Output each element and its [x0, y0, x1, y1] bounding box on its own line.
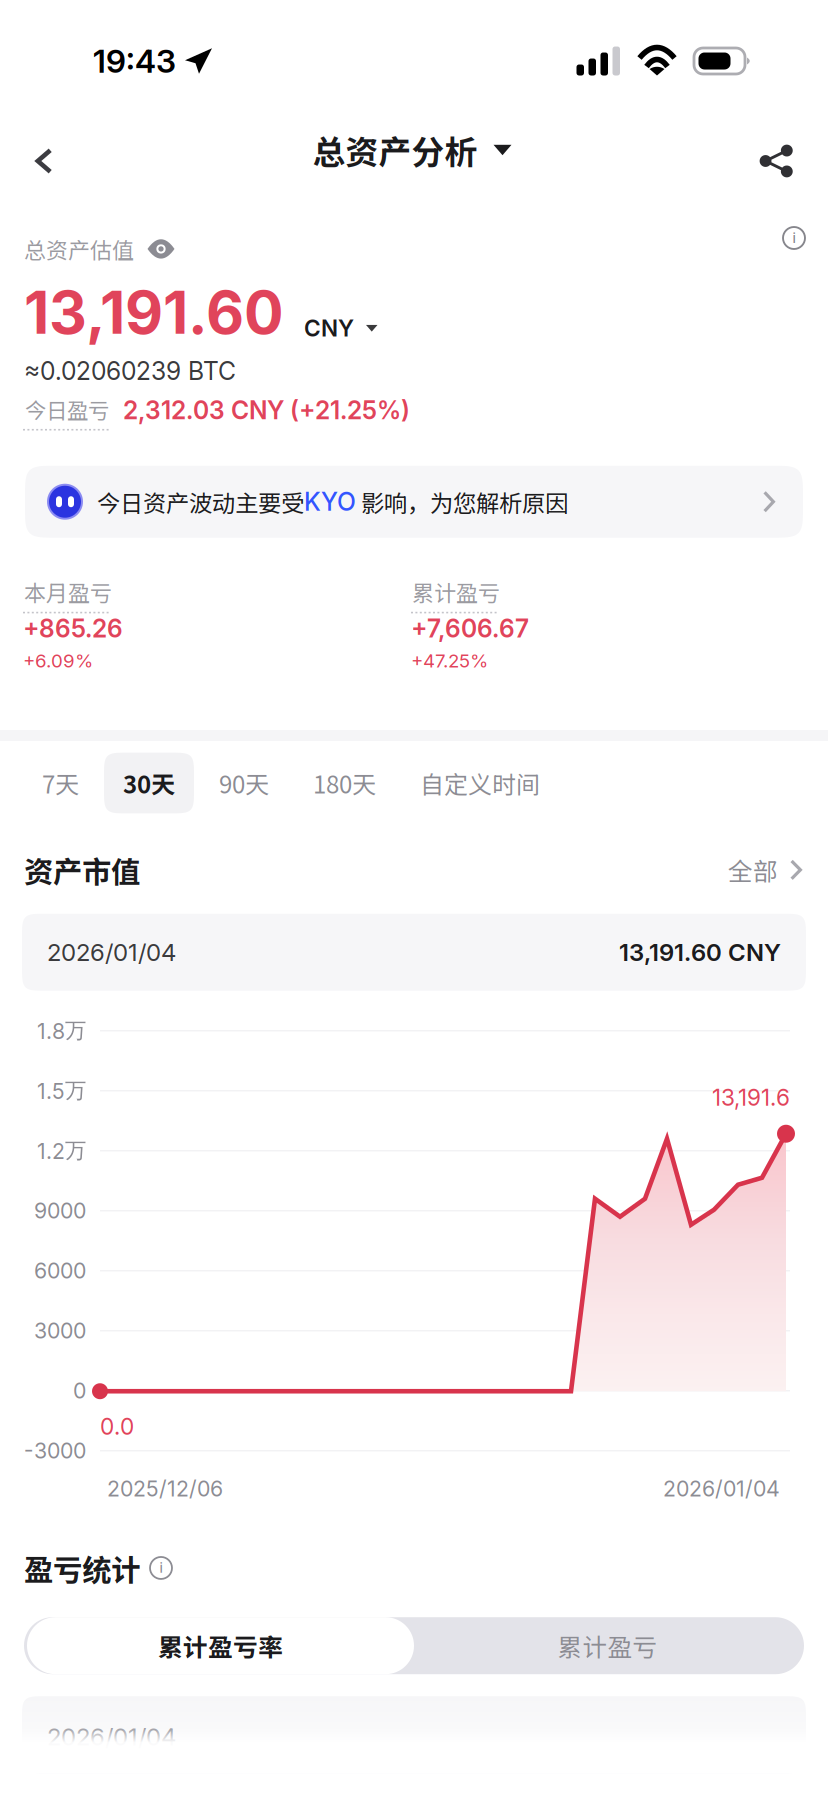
staticText: 19:43 [93, 42, 176, 80]
staticText: +6.09% [23, 649, 93, 672]
button[interactable]: Share [724, 124, 828, 198]
staticText: -3000 [24, 1438, 86, 1464]
button[interactable]: 累计盈亏率 [27, 1617, 414, 1674]
staticText: 总资产分析 [312, 126, 477, 174]
button[interactable]: CNY [284, 309, 383, 348]
staticText: 7天 [42, 766, 79, 800]
button[interactable]: 90天 [200, 753, 288, 813]
staticText: 9000 [34, 1198, 86, 1224]
staticText: +7,606.67 [411, 614, 529, 643]
staticText: i [792, 230, 795, 246]
button[interactable]: 180天 [294, 753, 395, 813]
staticText: ≈0.02060239 BTC [24, 356, 236, 386]
staticText: 累计盈亏率 [158, 1628, 283, 1663]
staticText: KYO [304, 487, 356, 517]
staticText: 13,191.6 [712, 1084, 790, 1111]
button[interactable]: 全部 [728, 842, 802, 898]
staticText: 30天 [123, 766, 175, 800]
staticText: 2026/01/04 [47, 938, 176, 967]
staticText: +865.26 [23, 614, 123, 643]
staticText: 0 [73, 1378, 86, 1404]
staticText: 0.0 [100, 1413, 134, 1440]
button[interactable]: 自定义时间 [401, 753, 559, 813]
staticText: 本月盈亏 [24, 576, 112, 608]
staticText: 13,191.60 [24, 277, 284, 348]
staticText: 6000 [34, 1258, 86, 1284]
staticText: 资产市值 [24, 849, 140, 891]
staticText: 2026/01/04 [47, 1722, 176, 1751]
button[interactable]: Info [766, 210, 822, 266]
staticText: 1.5万 [37, 1077, 86, 1104]
staticText: 影响，为您解析原因 [356, 485, 568, 519]
staticText: 今日资产波动主要受 [97, 485, 304, 519]
staticText: 90天 [219, 766, 269, 800]
staticText: 盈亏统计 [24, 1547, 140, 1589]
staticText: 累计盈亏 [557, 1628, 657, 1663]
staticText: 1.8万 [37, 1017, 86, 1044]
staticText: 1.2万 [37, 1137, 86, 1164]
staticText: +47.25% [411, 649, 488, 672]
staticText: 今日盈亏 [25, 394, 109, 425]
staticText: 自定义时间 [420, 766, 540, 800]
button[interactable]: 30天 [104, 753, 194, 813]
button[interactable]: 7天 [23, 753, 98, 813]
button[interactable]: Back [0, 124, 88, 198]
staticText: 13,191.60 CNY [619, 938, 781, 967]
staticText: 总资产估值 [24, 233, 134, 265]
button[interactable]: 总资产分析 [312, 122, 515, 200]
button[interactable]: 今日资产波动主要受 [25, 466, 803, 538]
staticText: i [159, 1560, 162, 1576]
staticText: 2026/01/04 [663, 1476, 780, 1501]
staticText: 2025/12/06 [107, 1476, 223, 1501]
button[interactable]: 累计盈亏 [414, 1617, 801, 1674]
staticText: 累计盈亏 [412, 576, 500, 608]
staticText: 3000 [34, 1318, 86, 1344]
staticText: CNY [304, 315, 354, 342]
staticText: 全部 [728, 852, 778, 888]
staticText: 180天 [313, 766, 376, 800]
staticText: 2,312.03 CNY (+21.25%) [123, 395, 410, 425]
